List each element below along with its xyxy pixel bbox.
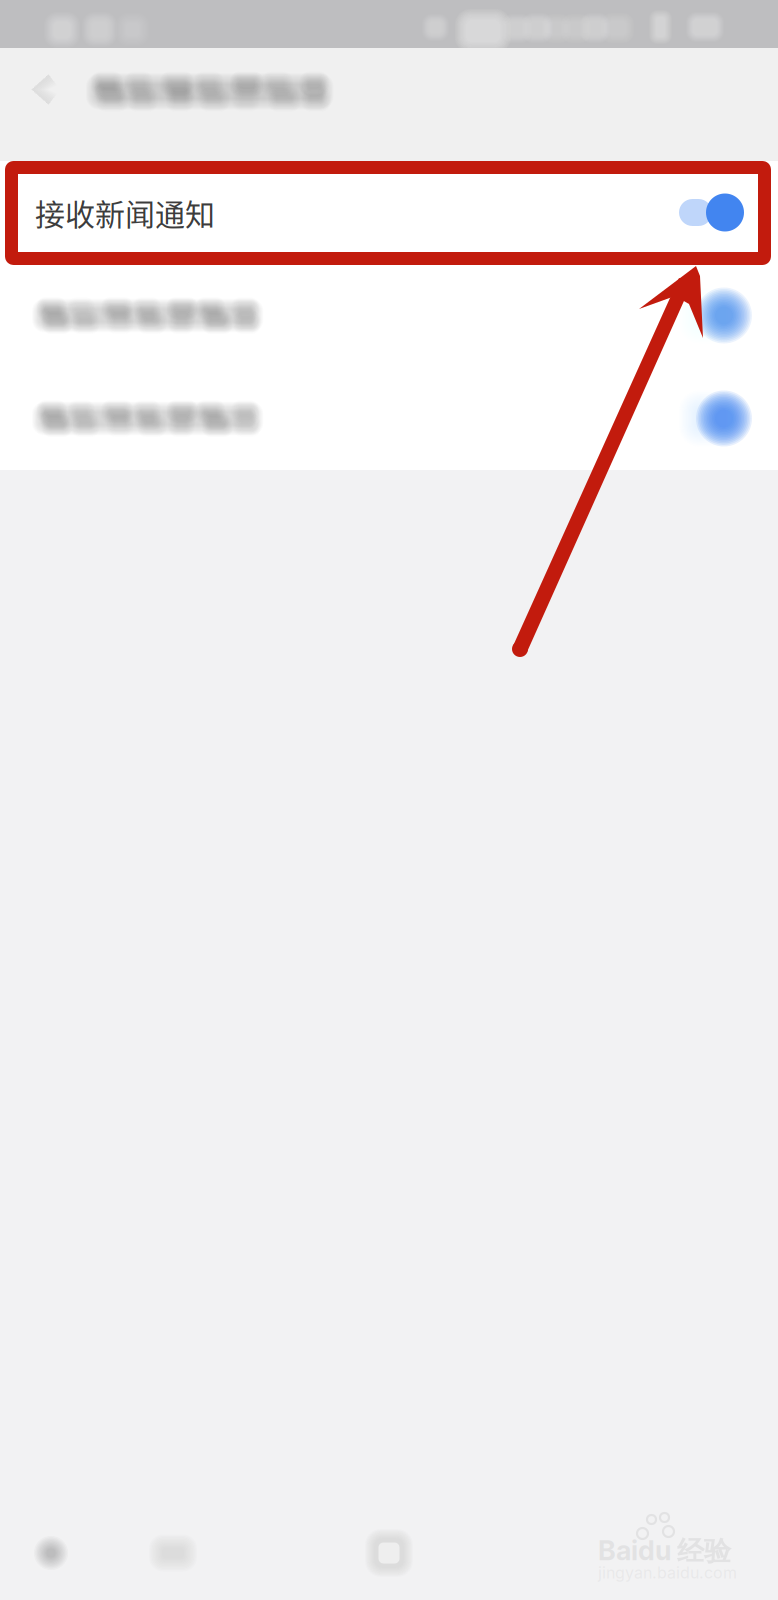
button[interactable]: Back (16, 1518, 86, 1588)
button[interactable]: 接收新闻通知 (0, 161, 778, 264)
button[interactable] (0, 367, 778, 470)
staticText: Baidu 经验 (598, 1534, 731, 1568)
staticText: 接收新闻通知 (35, 191, 215, 234)
staticText: jingyan.baidu.com (598, 1563, 737, 1582)
button[interactable]: Home (138, 1518, 208, 1588)
button[interactable]: Back (0, 48, 778, 161)
button[interactable] (0, 264, 778, 367)
button[interactable]: Recents (354, 1518, 424, 1588)
